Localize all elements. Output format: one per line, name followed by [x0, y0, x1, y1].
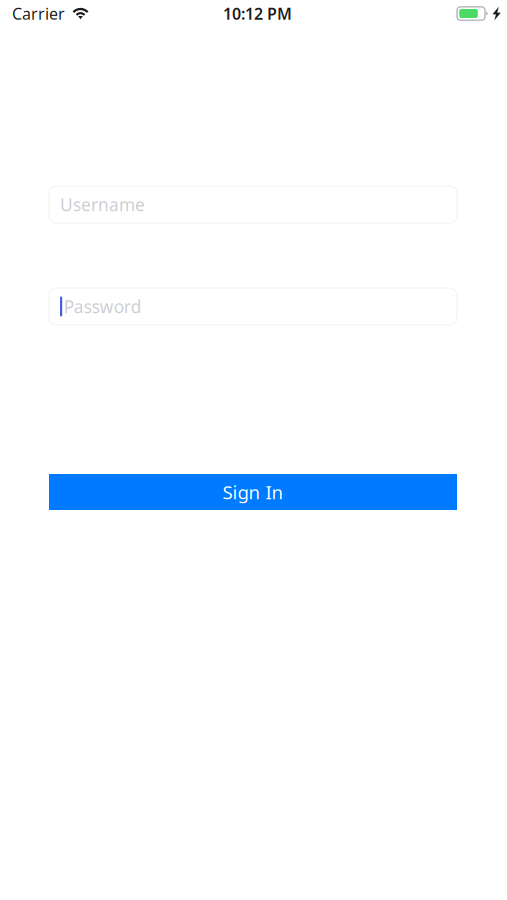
staticText: Sign In: [222, 480, 283, 504]
button[interactable]: Password: [49, 288, 457, 325]
staticText: Carrier: [12, 3, 65, 24]
button[interactable]: Sign In: [49, 474, 457, 510]
staticText: Username: [60, 193, 145, 216]
staticText: Password: [64, 295, 142, 318]
button[interactable]: Username: [49, 186, 457, 223]
staticText: 10:12 PM: [223, 3, 292, 24]
